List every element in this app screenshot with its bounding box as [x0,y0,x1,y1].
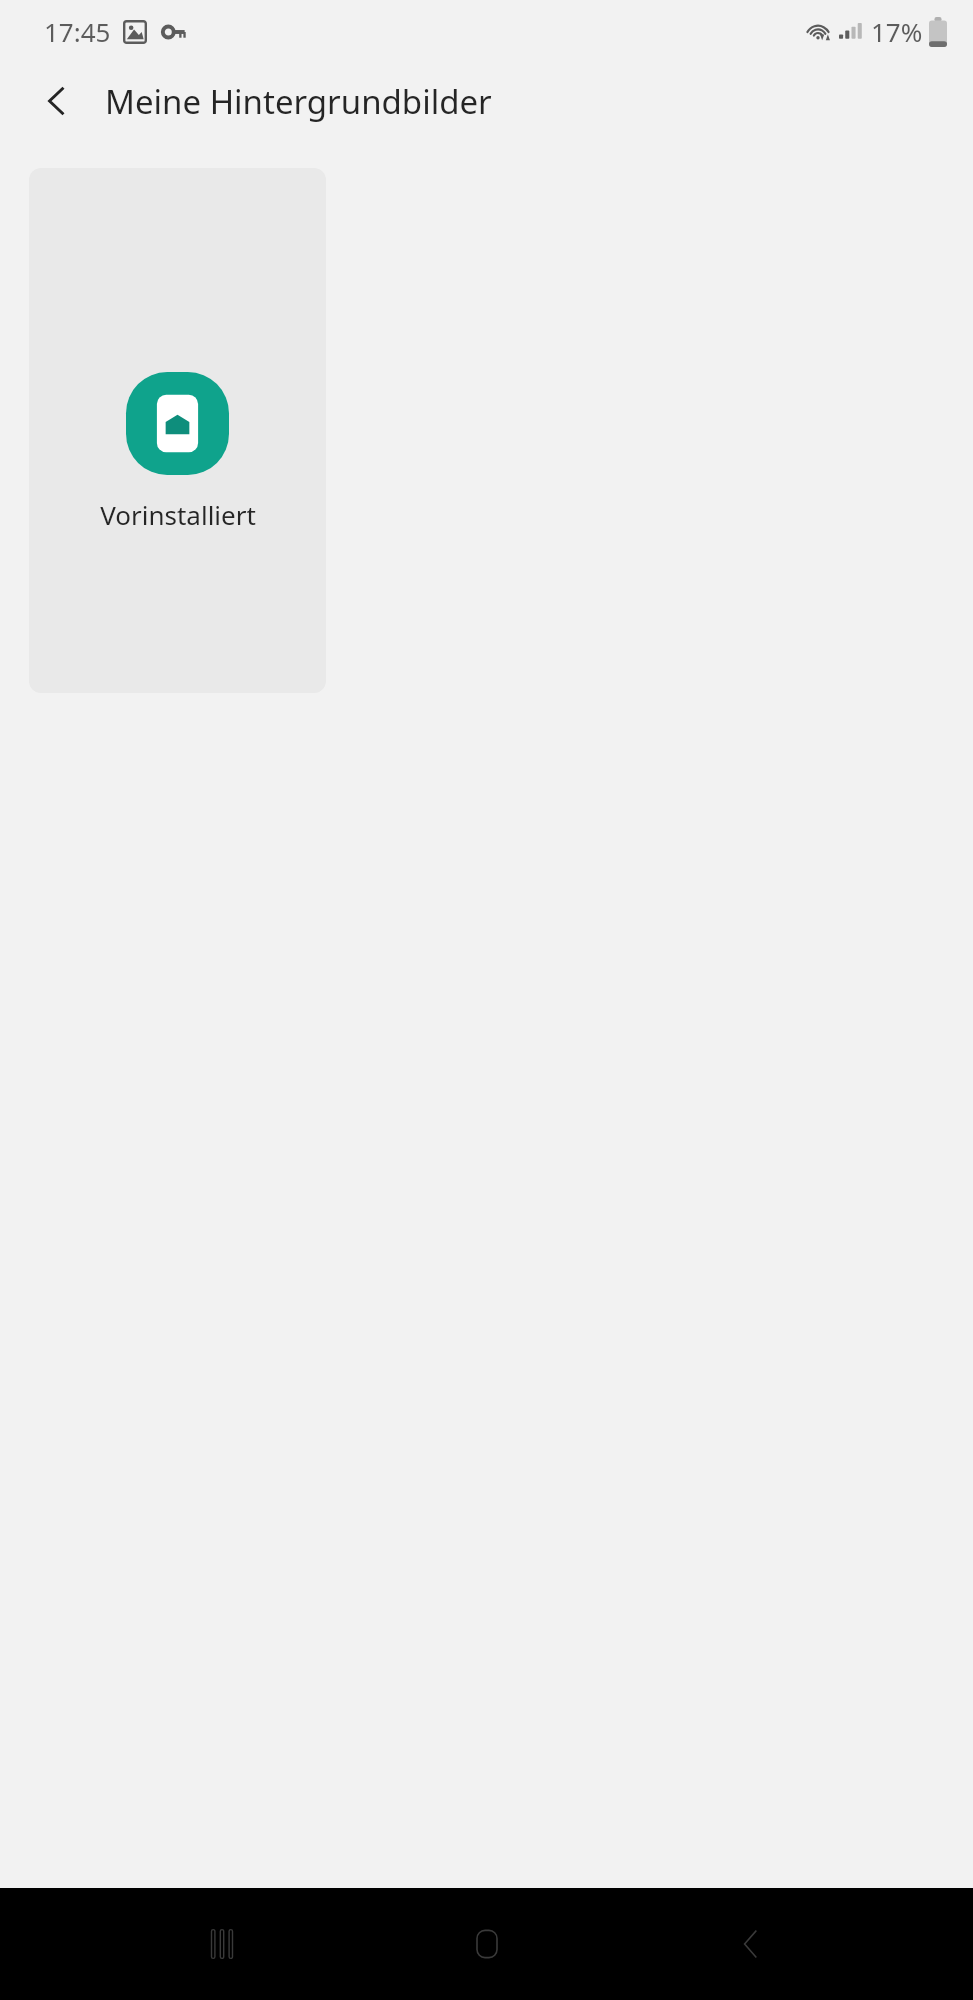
staticText: 17:45 [44,14,111,49]
staticText: 17% [871,14,923,49]
button[interactable]: Vorinstalliert [29,168,326,693]
button[interactable]: Home [445,1902,529,1986]
staticText: Vorinstalliert [100,497,256,532]
button[interactable]: Back [709,1902,793,1986]
staticText: Meine Hintergrundbilder [105,79,492,124]
button[interactable]: Back [26,70,88,132]
button[interactable]: Recents [180,1902,264,1986]
